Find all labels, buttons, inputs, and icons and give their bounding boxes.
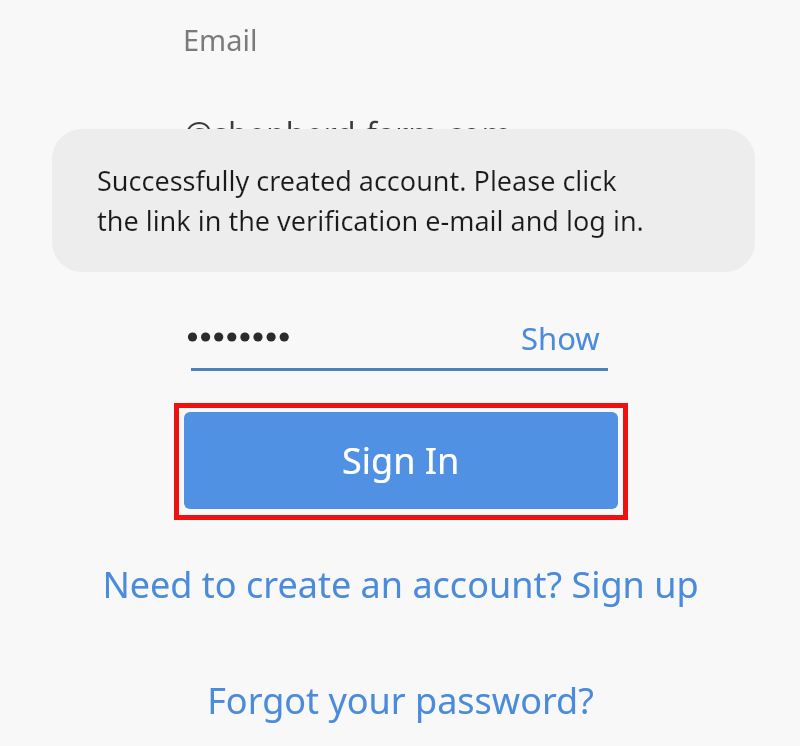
staticText: Sign In [342, 436, 460, 485]
staticText: the link in the verification e-mail and … [97, 202, 644, 239]
button[interactable]: Forgot your password? [0, 672, 800, 728]
button[interactable]: Sign In [184, 412, 618, 509]
button[interactable]: Show [515, 315, 612, 361]
staticText: Successfully created account. Please cli… [97, 162, 617, 199]
staticText: @shepherd-farm.com [184, 112, 512, 156]
staticText: Forgot your password? [207, 676, 594, 725]
button[interactable]: Successfully created account. Please cli… [52, 129, 755, 272]
staticText: Email [183, 20, 258, 59]
staticText: Password [190, 221, 322, 260]
staticText: Need to create an account? Sign up [102, 560, 699, 609]
button[interactable]: Need to create an account? Sign up [0, 556, 800, 612]
staticText: Show [521, 317, 600, 359]
